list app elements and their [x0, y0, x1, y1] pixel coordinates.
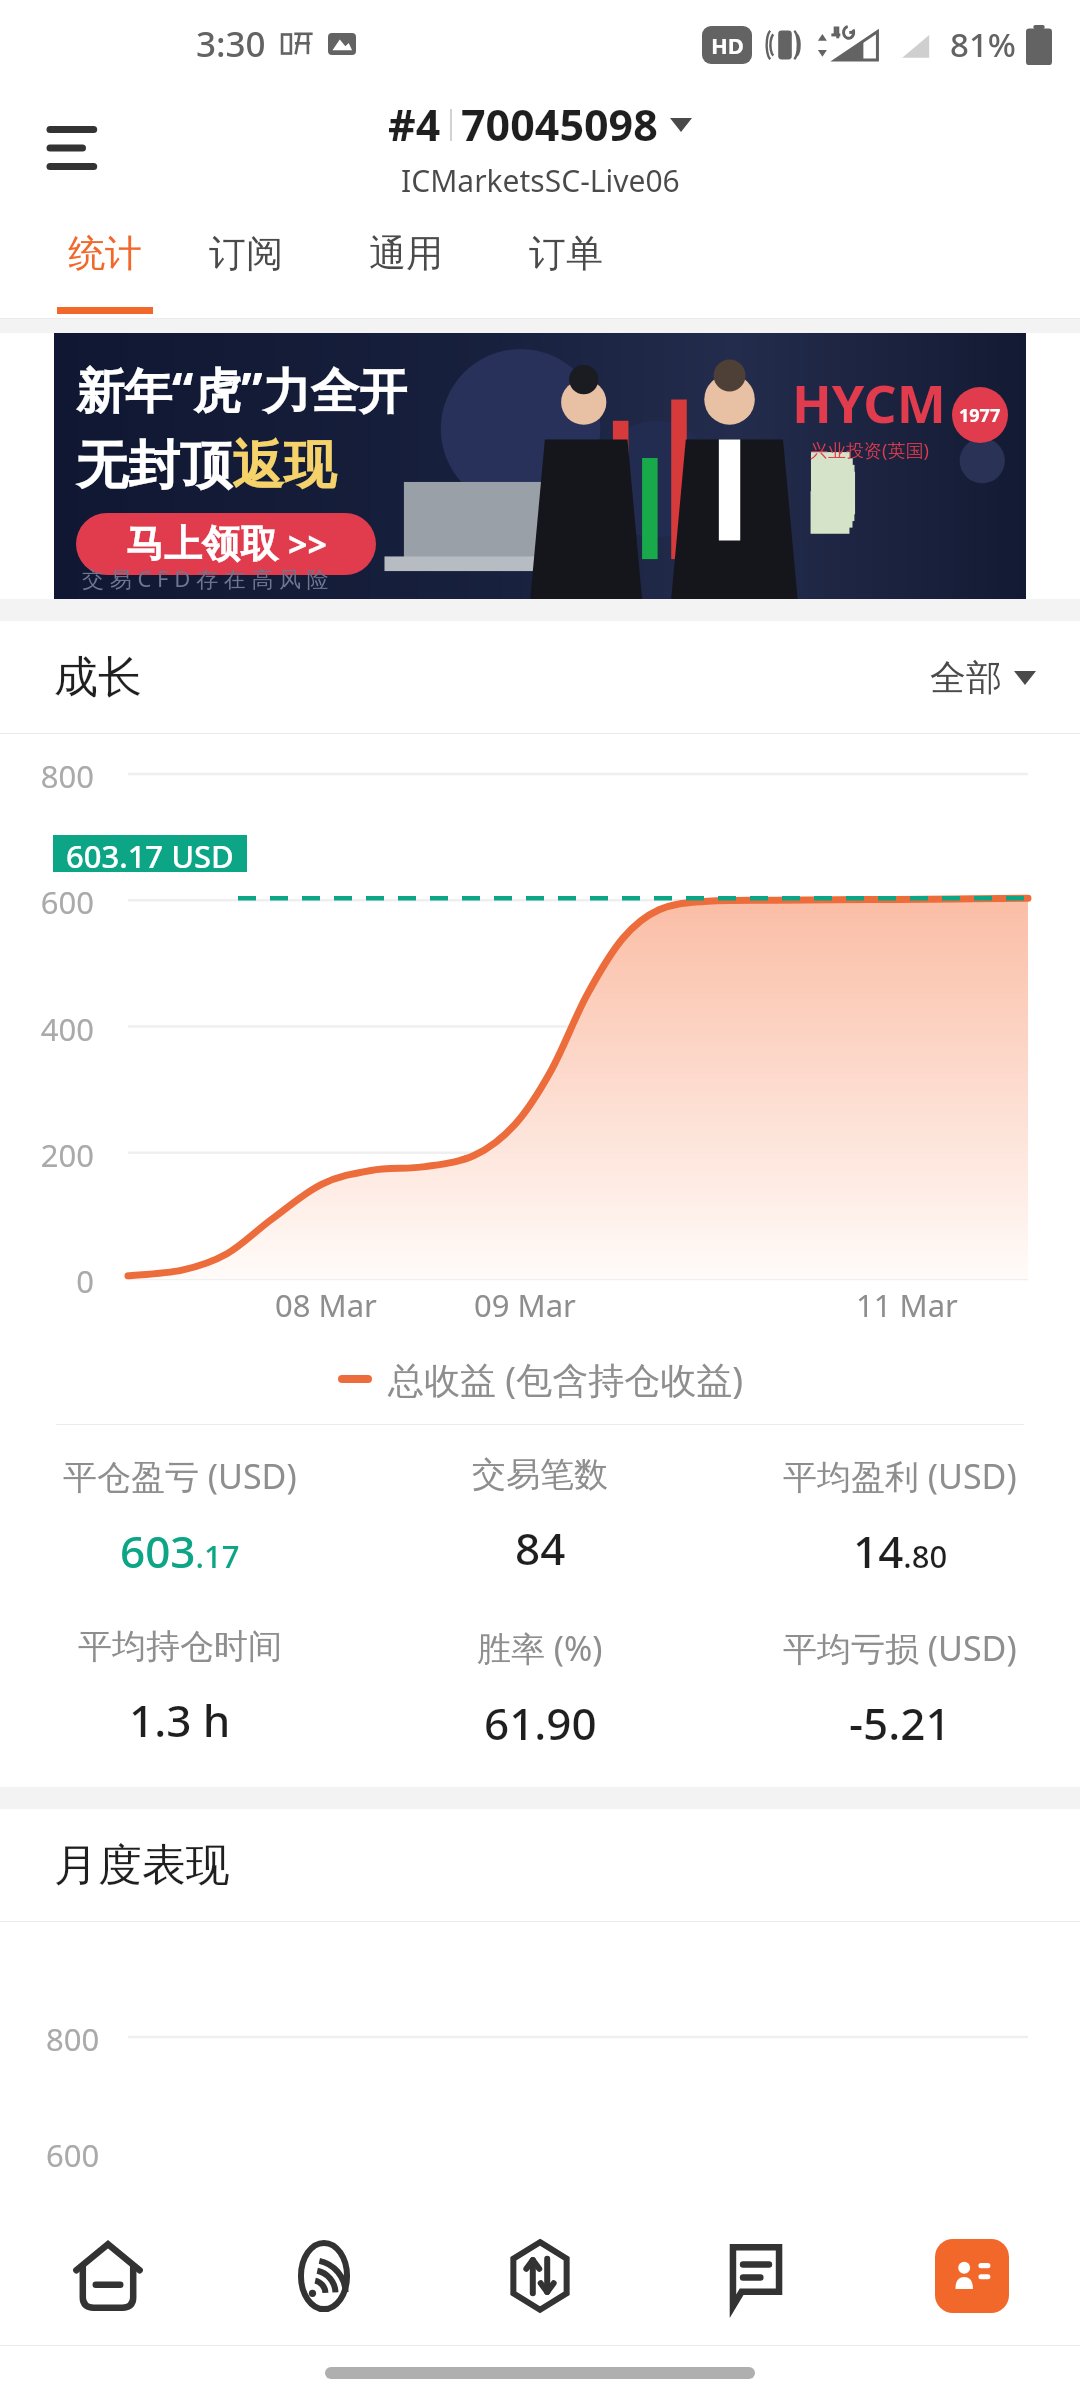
staticText: 3:30 — [196, 20, 266, 68]
staticText: 14.80 — [853, 1521, 948, 1581]
staticText: 0 — [0, 1260, 94, 1302]
staticText: 订阅 — [209, 230, 283, 277]
staticText: 600 — [0, 881, 94, 923]
staticText: 603.17 — [120, 1521, 240, 1581]
staticText: >> — [288, 521, 327, 567]
staticText: 月度表现 — [54, 1838, 230, 1893]
staticText: 订单 — [529, 230, 603, 277]
button[interactable]: Advertisement HYCM — [54, 333, 1026, 599]
button[interactable]: 订阅 — [166, 208, 326, 318]
button[interactable]: Signals — [216, 2207, 432, 2345]
staticText: 交 易 C F D 存 在 高 风 险 — [82, 563, 329, 593]
staticText: 61.90 — [484, 1693, 597, 1753]
staticText: 平均盈利 (USD) — [783, 1453, 1017, 1499]
staticText: 84 — [515, 1518, 566, 1578]
staticText: 800 — [46, 2018, 100, 2060]
staticText: 09 Mar — [474, 1284, 576, 1326]
button[interactable]: Messages — [648, 2207, 864, 2345]
staticText: 800 — [0, 755, 94, 797]
staticText: 200 — [0, 1134, 94, 1176]
staticText: 新年“虎”力全开 — [76, 357, 407, 423]
staticText: HYCM — [792, 367, 946, 438]
staticText: 1.3 h — [129, 1690, 231, 1750]
staticText: 400 — [0, 1008, 94, 1050]
button[interactable]: 统计 — [44, 208, 166, 318]
button[interactable]: 通用 — [326, 208, 486, 318]
button[interactable]: #4 — [388, 95, 692, 201]
staticText: 成长 — [54, 650, 142, 705]
button[interactable]: Menu — [36, 106, 120, 190]
staticText: 603.17 USD — [66, 835, 234, 872]
staticText: 无封顶 — [76, 433, 232, 499]
staticText: 平仓盈亏 (USD) — [63, 1453, 297, 1499]
staticText: 平均持仓时间 — [78, 1625, 282, 1668]
staticText: 11 Mar — [856, 1284, 958, 1326]
staticText: 兴业投资(英国) — [810, 438, 929, 463]
button[interactable]: Home — [0, 2207, 216, 2345]
button[interactable]: 订单 — [486, 208, 646, 318]
staticText: HD — [711, 30, 744, 60]
staticText: 返现 — [232, 433, 336, 499]
button[interactable]: Trade — [432, 2207, 648, 2345]
button[interactable]: Profile — [864, 2207, 1080, 2345]
staticText: 统计 — [68, 230, 142, 277]
staticText: #4 — [388, 95, 441, 154]
staticText: 600 — [46, 2134, 100, 2176]
button[interactable]: 全部 — [930, 655, 1036, 700]
staticText: 08 Mar — [275, 1284, 377, 1326]
staticText: 平均亏损 (USD) — [783, 1625, 1017, 1671]
button[interactable]: 马上领取 — [76, 513, 376, 575]
staticText: 马上领取 — [126, 520, 278, 568]
staticText: 81% — [950, 22, 1016, 67]
staticText: 交易笔数 — [472, 1453, 608, 1496]
staticText: 70045098 — [461, 95, 658, 154]
staticText: 全部 — [930, 655, 1002, 700]
staticText: ICMarketsSC-Live06 — [401, 160, 680, 201]
staticText: -5.21 — [849, 1693, 951, 1753]
staticText: 胜率 (%) — [477, 1625, 603, 1671]
staticText: 1977 — [959, 403, 1001, 428]
staticText: 通用 — [369, 230, 443, 277]
staticText: 总收益 (包含持仓收益) — [388, 1355, 743, 1404]
